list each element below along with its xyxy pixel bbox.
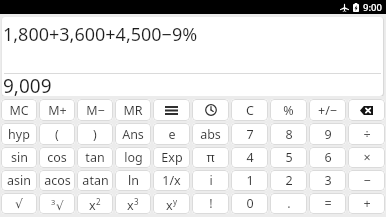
staticText: =: [324, 195, 332, 212]
button[interactable]: sin: [1, 147, 37, 168]
button[interactable]: log: [115, 147, 151, 168]
button[interactable]: asin: [1, 170, 37, 191]
button[interactable]: %: [270, 99, 307, 121]
button[interactable]: x: [115, 193, 151, 214]
staticText: C: [246, 102, 254, 119]
staticText: +: [363, 195, 371, 212]
button[interactable]: 5: [270, 147, 307, 168]
button[interactable]: +: [348, 193, 385, 214]
button[interactable]: M+: [39, 99, 75, 121]
button[interactable]: 1: [231, 170, 268, 191]
button[interactable]: Menu: [153, 99, 190, 121]
staticText: 3: [134, 196, 139, 207]
staticText: !: [209, 195, 213, 212]
button[interactable]: ): [77, 123, 113, 145]
staticText: tan: [85, 149, 105, 166]
staticText: atan: [82, 172, 109, 189]
button[interactable]: Delete: [348, 99, 385, 121]
button[interactable]: 8: [270, 123, 307, 145]
button[interactable]: −: [348, 170, 385, 191]
button[interactable]: .: [270, 193, 307, 214]
button[interactable]: abs: [192, 123, 229, 145]
button[interactable]: (: [39, 123, 75, 145]
button[interactable]: ÷: [348, 123, 385, 145]
staticText: 1/x: [162, 172, 181, 189]
staticText: 3: [51, 197, 56, 207]
staticText: 1,800+3,600+4,500−9%: [3, 22, 198, 47]
staticText: Ans: [122, 126, 144, 143]
button[interactable]: M−: [77, 99, 113, 121]
staticText: log: [124, 149, 143, 166]
staticText: 1: [246, 172, 254, 189]
button[interactable]: hyp: [1, 123, 37, 145]
staticText: e: [168, 126, 176, 143]
button[interactable]: i: [192, 170, 229, 191]
staticText: MC: [9, 102, 29, 119]
staticText: π: [206, 149, 215, 166]
staticText: 5: [285, 149, 293, 166]
staticText: 4: [246, 149, 254, 166]
staticText: M+: [48, 102, 67, 119]
staticText: abs: [200, 126, 221, 143]
staticText: 9,009: [3, 73, 52, 96]
staticText: hyp: [8, 126, 30, 143]
staticText: √: [15, 196, 23, 211]
button[interactable]: x: [77, 193, 113, 214]
staticText: x: [166, 197, 173, 214]
staticText: 7: [246, 126, 254, 143]
button[interactable]: 2: [270, 170, 307, 191]
staticText: x: [127, 197, 134, 214]
staticText: −: [363, 172, 371, 189]
staticText: +/−: [318, 102, 337, 119]
button[interactable]: 1/x: [153, 170, 190, 191]
button[interactable]: History: [192, 99, 229, 121]
staticText: MR: [123, 102, 143, 119]
staticText: 2: [96, 196, 101, 207]
staticText: 9:00: [363, 1, 382, 14]
button[interactable]: !: [192, 193, 229, 214]
staticText: √: [56, 199, 64, 213]
button[interactable]: π: [192, 147, 229, 168]
button[interactable]: C: [231, 99, 268, 121]
staticText: 2: [285, 172, 293, 189]
button[interactable]: 7: [231, 123, 268, 145]
staticText: acos: [44, 172, 71, 189]
button[interactable]: x: [153, 193, 190, 214]
button[interactable]: 6: [309, 147, 346, 168]
staticText: .: [287, 195, 291, 212]
button[interactable]: 9: [309, 123, 346, 145]
button[interactable]: tan: [77, 147, 113, 168]
staticText: ÷: [363, 126, 371, 143]
button[interactable]: 0: [231, 193, 268, 214]
staticText: ): [93, 126, 97, 143]
staticText: sin: [11, 149, 28, 166]
staticText: 0: [246, 195, 254, 212]
button[interactable]: +/−: [309, 99, 346, 121]
button[interactable]: 3: [39, 193, 75, 214]
button[interactable]: Ans: [115, 123, 151, 145]
button[interactable]: =: [309, 193, 346, 214]
button[interactable]: MR: [115, 99, 151, 121]
button[interactable]: cos: [39, 147, 75, 168]
staticText: ×: [363, 149, 371, 166]
staticText: cos: [47, 149, 67, 166]
button[interactable]: atan: [77, 170, 113, 191]
button[interactable]: MC: [1, 99, 37, 121]
staticText: 9: [324, 126, 332, 143]
staticText: i: [209, 172, 213, 189]
staticText: M−: [86, 102, 105, 119]
button[interactable]: e: [153, 123, 190, 145]
button[interactable]: √: [1, 193, 37, 214]
staticText: %: [283, 102, 294, 119]
button[interactable]: acos: [39, 170, 75, 191]
staticText: 6: [324, 149, 332, 166]
button[interactable]: ×: [348, 147, 385, 168]
staticText: 3: [324, 172, 332, 189]
staticText: asin: [7, 172, 31, 189]
staticText: x: [89, 197, 96, 214]
button[interactable]: 4: [231, 147, 268, 168]
button[interactable]: 3: [309, 170, 346, 191]
staticText: 8: [285, 126, 293, 143]
button[interactable]: Exp: [153, 147, 190, 168]
button[interactable]: ln: [115, 170, 151, 191]
